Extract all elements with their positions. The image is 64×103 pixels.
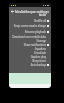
button[interactable]: Download over mobile data bbox=[9, 35, 51, 39]
button[interactable]: Sleep timer bbox=[9, 59, 51, 63]
button[interactable]: Show notifications bbox=[9, 43, 51, 47]
staticText: Mediatheque settings bbox=[15, 9, 49, 13]
button[interactable]: Gapless play bbox=[9, 55, 51, 59]
button[interactable]: Equalizer bbox=[9, 47, 51, 51]
staticText: Shuffle all bbox=[9, 19, 46, 23]
staticText: Equalizer bbox=[9, 47, 46, 51]
staticText: Crossfade bbox=[9, 51, 46, 55]
staticText: Auto backup bbox=[9, 63, 46, 67]
staticText: Resume playback bbox=[9, 30, 46, 34]
button[interactable]: Crossfade bbox=[9, 51, 51, 55]
staticText: Download over mobile data bbox=[9, 35, 46, 39]
staticText: Gapless play bbox=[9, 55, 46, 59]
button[interactable]: Resume playback bbox=[9, 30, 51, 34]
staticText: Keep screen awake always bbox=[9, 24, 46, 28]
button[interactable]: Audio bbox=[9, 13, 51, 17]
staticText: Audio bbox=[9, 13, 46, 17]
button[interactable]: Navigate up bbox=[9, 8, 15, 14]
staticText: Storage bbox=[9, 39, 46, 43]
button[interactable]: Shuffle all bbox=[9, 19, 51, 23]
button[interactable]: Keep screen awake always bbox=[9, 24, 51, 28]
staticText: Show notifications bbox=[9, 43, 46, 47]
staticText: Sleep timer bbox=[9, 59, 46, 63]
button[interactable]: Storage bbox=[9, 39, 51, 43]
button[interactable]: Auto backup bbox=[9, 63, 51, 67]
